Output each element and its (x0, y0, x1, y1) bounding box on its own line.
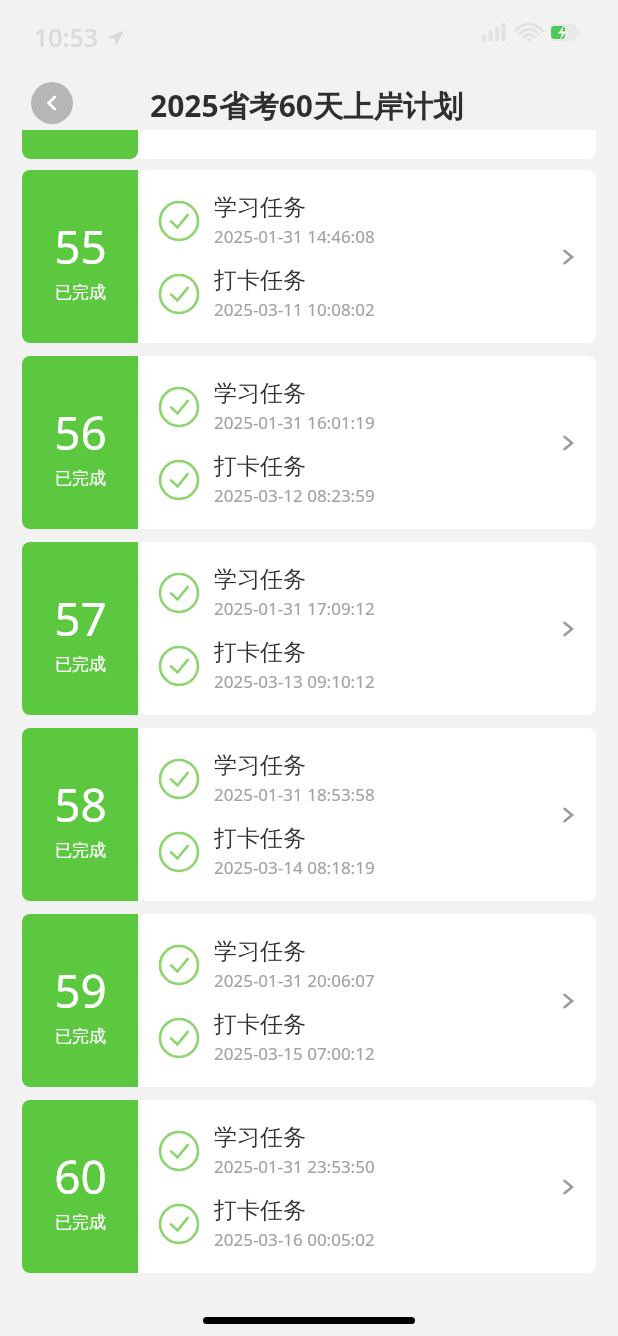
staticText: 学习任务 (214, 379, 306, 408)
staticText: 已完成 (55, 840, 106, 861)
button[interactable]: 56 (22, 356, 596, 529)
staticText: 已完成 (55, 654, 106, 675)
staticText: 2025-01-31 23:53:50 (214, 1155, 375, 1178)
staticText: 2025-03-11 10:08:02 (214, 298, 375, 321)
staticText: 55 (54, 215, 107, 278)
staticText: 学习任务 (214, 565, 306, 594)
staticText: 10:53 (34, 20, 99, 54)
staticText: 2025-01-31 20:06:07 (214, 969, 375, 992)
staticText: 学习任务 (214, 1123, 306, 1152)
staticText: 2025-03-12 08:23:59 (214, 484, 375, 507)
staticText: 56 (54, 401, 107, 464)
staticText: 2025-01-31 18:53:58 (214, 783, 375, 806)
staticText: 学习任务 (214, 193, 306, 222)
button[interactable]: 57 (22, 542, 596, 715)
staticText: 打卡任务 (214, 452, 306, 481)
staticText: 57 (54, 587, 107, 650)
staticText: 58 (54, 773, 107, 836)
button[interactable] (22, 130, 596, 159)
staticText: 2025省考60天上岸计划 (150, 85, 463, 126)
button[interactable]: Back (31, 82, 73, 124)
button[interactable]: 58 (22, 728, 596, 901)
staticText: 已完成 (55, 282, 106, 303)
staticText: 打卡任务 (214, 1010, 306, 1039)
staticText: 2025-03-16 00:05:02 (214, 1228, 375, 1251)
button[interactable]: 60 (22, 1100, 596, 1273)
staticText: 打卡任务 (214, 824, 306, 853)
staticText: 打卡任务 (214, 1196, 306, 1225)
button[interactable]: 55 (22, 170, 596, 343)
staticText: 已完成 (55, 1026, 106, 1047)
staticText: 学习任务 (214, 751, 306, 780)
staticText: 打卡任务 (214, 638, 306, 667)
staticText: 学习任务 (214, 937, 306, 966)
staticText: 2025-03-14 08:18:19 (214, 856, 375, 879)
staticText: 2025-01-31 16:01:19 (214, 411, 375, 434)
button[interactable]: 59 (22, 914, 596, 1087)
staticText: 2025-01-31 17:09:12 (214, 597, 375, 620)
staticText: 2025-01-31 14:46:08 (214, 225, 375, 248)
staticText: 60 (54, 1145, 107, 1208)
staticText: 2025-03-15 07:00:12 (214, 1042, 375, 1065)
staticText: 打卡任务 (214, 266, 306, 295)
staticText: 已完成 (55, 468, 106, 489)
staticText: 59 (54, 959, 107, 1022)
staticText: 已完成 (55, 1212, 106, 1233)
staticText: 2025-03-13 09:10:12 (214, 670, 375, 693)
